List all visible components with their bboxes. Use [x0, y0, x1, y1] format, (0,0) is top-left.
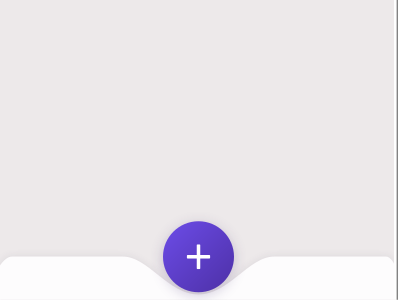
button[interactable]: Add [163, 221, 234, 292]
